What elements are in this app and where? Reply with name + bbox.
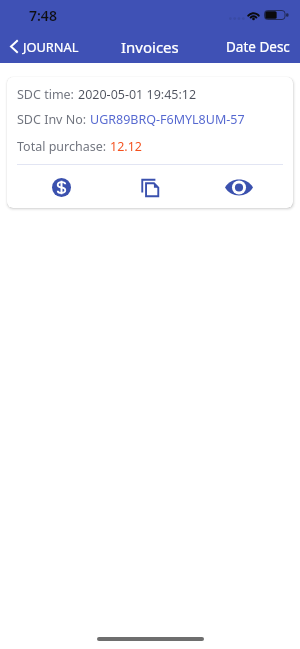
staticText: 7:48 xyxy=(29,6,57,25)
button[interactable]: SDC time: xyxy=(7,77,293,208)
button[interactable]: View invoice xyxy=(194,167,283,207)
staticText: Invoices xyxy=(121,37,179,57)
button[interactable]: Pay invoice xyxy=(17,167,105,207)
staticText: SDC Inv No: xyxy=(17,111,90,128)
staticText: SDC time: xyxy=(17,86,78,103)
staticText: JOURNAL xyxy=(23,38,79,55)
staticText: 2020-05-01 19:45:12 xyxy=(78,86,197,103)
staticText: UGR89BRQ-F6MYL8UM-57 xyxy=(90,111,245,128)
button[interactable]: JOURNAL xyxy=(0,33,89,60)
button[interactable]: Copy invoice number xyxy=(105,167,194,207)
staticText: 12.12 xyxy=(110,138,142,155)
staticText: Total purchase: xyxy=(17,138,110,155)
button[interactable]: Date Desc xyxy=(216,32,300,62)
